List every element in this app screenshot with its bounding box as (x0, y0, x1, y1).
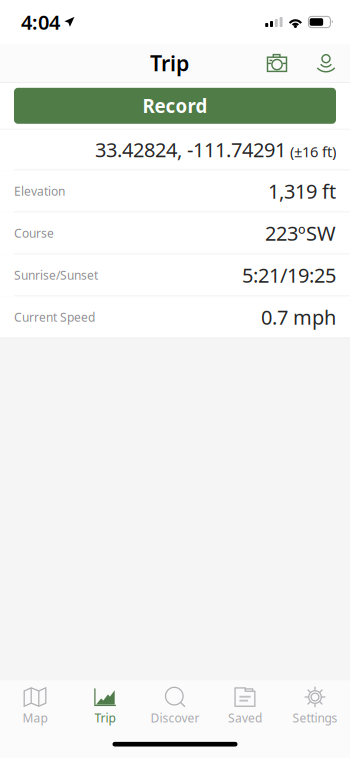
button[interactable]: Camera (257, 44, 297, 82)
staticText: Record (142, 93, 207, 118)
button[interactable]: Track location (307, 44, 345, 82)
staticText: Elevation (14, 183, 65, 199)
staticText: Sunrise/Sunset (14, 267, 98, 283)
staticText: 223ºSW (265, 220, 336, 246)
button[interactable]: Saved (210, 681, 280, 725)
staticText: Settings (292, 710, 337, 726)
staticText: Saved (228, 710, 262, 726)
staticText: (±16 ft) (286, 142, 336, 161)
staticText: 5:21/19:25 (242, 262, 336, 288)
staticText: 1,319 ft (268, 178, 336, 204)
staticText: Current Speed (14, 309, 95, 325)
button[interactable]: Map (0, 681, 70, 725)
staticText: Map (22, 710, 47, 726)
button[interactable]: Record (14, 88, 336, 124)
button[interactable]: Trip (70, 681, 140, 725)
staticText: Trip (150, 49, 189, 77)
staticText: 4:04 (21, 9, 60, 35)
staticText: 33.42824, -111.74291 (95, 136, 286, 163)
button[interactable]: Settings (280, 681, 350, 725)
button[interactable]: Discover (140, 681, 210, 725)
staticText: Trip (94, 710, 115, 726)
staticText: Discover (150, 710, 199, 726)
staticText: Course (14, 225, 54, 241)
staticText: 0.7 mph (261, 304, 336, 330)
